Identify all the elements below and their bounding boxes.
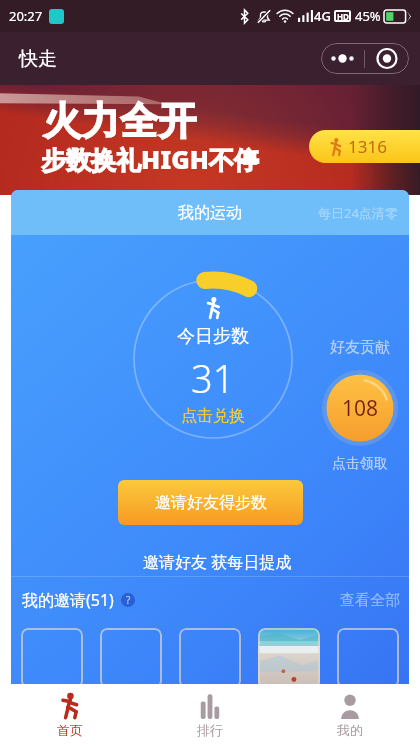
staticText: 好友贡献 — [330, 338, 390, 357]
staticText: HD — [337, 11, 349, 22]
button[interactable]: 好友贡献 — [310, 338, 409, 473]
button[interactable] — [100, 628, 162, 684]
button[interactable] — [21, 628, 83, 684]
button[interactable]: 排行 — [140, 684, 280, 747]
button[interactable]: 我的邀请(51) — [22, 589, 135, 611]
staticText: 快走 — [19, 47, 57, 71]
staticText: 每日24点清零 — [318, 204, 398, 222]
staticText: 首页 — [57, 722, 83, 738]
button[interactable] — [179, 628, 241, 684]
button[interactable]: 邀请好友得步数 — [118, 480, 303, 525]
button[interactable]: More options — [321, 43, 409, 74]
staticText: 步数换礼HIGH不停 — [41, 142, 259, 176]
staticText: 点击兑换 — [181, 406, 245, 426]
staticText: 排行 — [197, 722, 223, 738]
button[interactable]: 我的 — [280, 684, 420, 747]
button[interactable]: 首页 — [0, 684, 140, 747]
staticText: 火力全开 — [43, 97, 197, 145]
staticText: 31 — [191, 352, 235, 404]
staticText: 今日步数 — [177, 325, 249, 348]
staticText: 我的 — [337, 722, 363, 738]
staticText: 邀请好友得步数 — [155, 493, 267, 513]
button[interactable]: 1316 — [309, 130, 420, 163]
staticText: 20:27 — [9, 7, 43, 25]
staticText: 1316 — [348, 135, 387, 158]
button[interactable] — [258, 628, 320, 684]
button[interactable]: 查看全部 — [340, 591, 400, 610]
staticText: 邀请好友 获每日提成 — [143, 551, 292, 573]
button[interactable] — [337, 628, 399, 684]
staticText: 4G — [314, 7, 331, 25]
staticText: 108 — [342, 394, 379, 423]
staticText: 45% — [355, 7, 381, 25]
staticText: 点击领取 — [332, 455, 388, 473]
staticText: 我的邀请(51) — [22, 589, 114, 611]
staticText: 我的运动 — [178, 203, 242, 223]
staticText: ? — [126, 593, 131, 607]
